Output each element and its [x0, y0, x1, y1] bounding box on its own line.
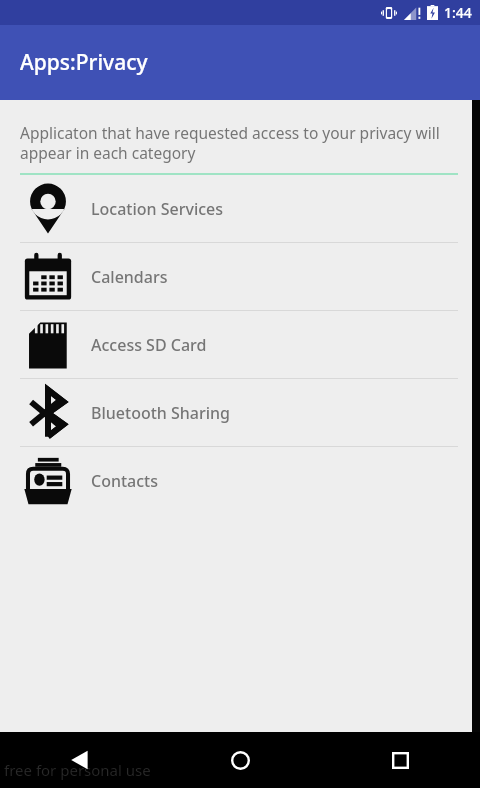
staticText: Contacts — [91, 470, 159, 492]
staticText: Location Services — [91, 198, 224, 220]
staticText: 1:44 — [444, 3, 472, 22]
staticText: Access SD Card — [91, 334, 207, 356]
button[interactable]: Bluetooth Sharing — [0, 379, 480, 447]
button[interactable]: Calendars — [0, 243, 480, 311]
button[interactable]: Access SD Card — [0, 311, 480, 379]
staticText: Bluetooth Sharing — [91, 402, 231, 424]
button[interactable]: Back — [0, 732, 160, 788]
staticText: Calendars — [91, 266, 168, 288]
staticText: free for personal use — [4, 760, 151, 780]
button[interactable]: Home — [160, 732, 320, 788]
staticText: Apps:Privacy — [20, 48, 148, 77]
button[interactable]: Location Services — [0, 175, 480, 243]
staticText: Applicaton that have requested access to… — [20, 122, 458, 164]
button[interactable]: Recent apps — [320, 732, 480, 788]
button[interactable]: Contacts — [0, 447, 480, 514]
